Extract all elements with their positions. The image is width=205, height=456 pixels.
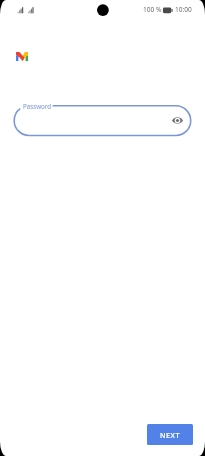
staticText: 100 % bbox=[143, 5, 162, 14]
staticText: Password bbox=[23, 102, 51, 110]
button[interactable]: Show password bbox=[167, 110, 187, 130]
button[interactable]: NEXT bbox=[147, 424, 193, 445]
staticText: 10:00 bbox=[175, 5, 192, 14]
staticText: NEXT bbox=[160, 430, 181, 440]
